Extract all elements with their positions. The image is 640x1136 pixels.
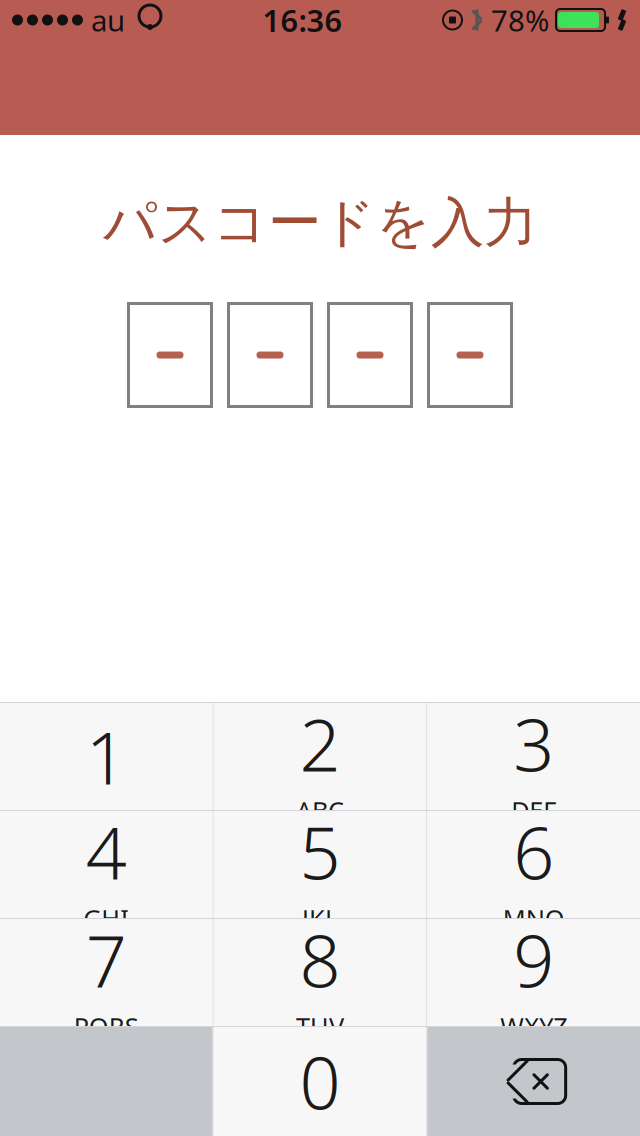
staticText: 5 xyxy=(299,804,340,899)
staticText: 4 xyxy=(86,804,127,899)
button[interactable]: 7 xyxy=(0,919,213,1026)
staticText: TUV xyxy=(296,1009,344,1043)
button[interactable]: 0 xyxy=(214,1027,426,1136)
staticText: au xyxy=(91,0,125,39)
staticText: 8 xyxy=(299,912,340,1007)
staticText: MNO xyxy=(503,901,565,935)
staticText: PQRS xyxy=(74,1009,139,1043)
button[interactable]: 1 xyxy=(0,703,213,810)
button[interactable]: 8 xyxy=(214,919,426,1026)
staticText: 16:36 xyxy=(262,0,342,40)
staticText: 0 xyxy=(299,1034,340,1129)
staticText: 78% xyxy=(491,0,549,39)
button[interactable]: 6 xyxy=(427,811,640,918)
staticText: 2 xyxy=(299,696,340,791)
staticText: 6 xyxy=(513,804,554,899)
staticText: WXYZ xyxy=(500,1009,567,1043)
button[interactable]: 2 xyxy=(214,703,426,810)
staticText: DEF xyxy=(511,793,556,827)
button[interactable]: Delete xyxy=(427,1027,640,1136)
button[interactable]: 4 xyxy=(0,811,213,918)
staticText: 3 xyxy=(513,696,554,791)
button[interactable]: 9 xyxy=(427,919,640,1026)
staticText: 1 xyxy=(86,709,127,804)
staticText: 9 xyxy=(513,912,554,1007)
staticText: JKL xyxy=(302,901,338,935)
staticText: GHI xyxy=(83,901,129,935)
staticText: 7 xyxy=(86,912,127,1007)
button[interactable]: 3 xyxy=(427,703,640,810)
button[interactable]: 5 xyxy=(214,811,426,918)
staticText: ABC xyxy=(296,793,344,827)
staticText: パスコードを入力 xyxy=(103,190,537,255)
